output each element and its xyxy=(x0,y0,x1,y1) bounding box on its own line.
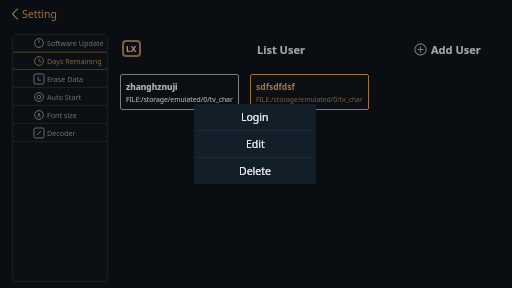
staticText: Edit xyxy=(246,137,265,151)
staticText: LX xyxy=(126,43,137,55)
staticText: FILE:/storage/emulated/0/tv_char xyxy=(126,95,233,104)
staticText: Erase Data xyxy=(47,74,84,84)
button[interactable]: sdfsdfdsf xyxy=(250,74,369,110)
button[interactable]: Login xyxy=(194,104,316,130)
button[interactable]: zhanghznuji xyxy=(120,74,239,110)
staticText: List User xyxy=(257,42,305,57)
button[interactable]: Font size xyxy=(12,106,108,124)
staticText: sdfsdfdsf xyxy=(256,81,295,93)
staticText: Add User xyxy=(431,42,481,57)
button[interactable]: Decoder xyxy=(12,124,108,142)
staticText: Auto Start xyxy=(47,92,81,102)
button[interactable]: Edit xyxy=(194,131,316,157)
staticText: Days Remaining xyxy=(47,56,102,66)
staticText: Decoder xyxy=(47,128,76,138)
staticText: Setting xyxy=(22,7,57,21)
staticText: Login xyxy=(241,110,269,124)
button[interactable]: Delete xyxy=(194,158,316,184)
button[interactable]: Software Update xyxy=(12,34,108,52)
button[interactable]: LX logo xyxy=(123,41,140,56)
staticText: FILE:/storage/emulated/0/tv_char xyxy=(256,95,363,104)
button[interactable]: Days Remaining xyxy=(12,52,108,70)
button[interactable]: Add User xyxy=(412,40,483,59)
button[interactable]: Back xyxy=(10,6,58,22)
staticText: zhanghznuji xyxy=(126,81,178,93)
button[interactable]: Erase Data xyxy=(12,70,108,88)
staticText: Font size xyxy=(47,110,77,120)
button[interactable]: Auto Start xyxy=(12,88,108,106)
staticText: Delete xyxy=(239,164,271,178)
staticText: Software Update xyxy=(47,38,104,48)
other: Back xyxy=(11,7,19,21)
